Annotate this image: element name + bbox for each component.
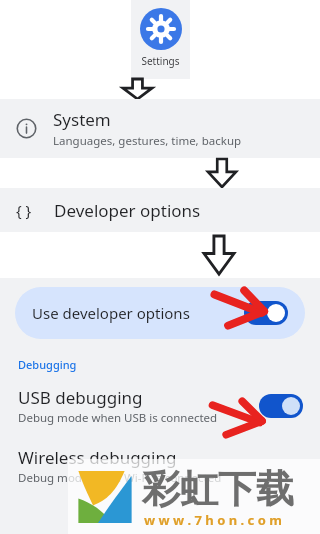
staticText: 彩虹下载 — [142, 465, 294, 513]
button[interactable]: Toggle — [244, 301, 288, 325]
staticText: Debug mode when Wi-Fi is connected — [18, 470, 222, 486]
staticText: w w w . 7 h o n . c o m — [144, 511, 282, 529]
staticText: Wireless debugging — [18, 446, 177, 469]
button[interactable]: Toggle — [259, 394, 303, 418]
staticText: Use developer options — [32, 303, 190, 323]
button[interactable]: Settings — [131, 0, 190, 79]
staticText: Settings — [141, 54, 180, 68]
staticText: Debugging — [18, 357, 77, 372]
staticText: Languages, gestures, time, backup — [53, 133, 242, 149]
staticText: System — [53, 108, 111, 131]
button[interactable]: { } — [0, 188, 320, 232]
staticText: Developer options — [54, 199, 201, 222]
button[interactable]: Use developer options — [15, 287, 305, 339]
staticText: { } — [16, 200, 32, 220]
button[interactable]: System — [0, 99, 320, 158]
button[interactable]: USB debugging — [0, 384, 320, 428]
staticText: USB debugging — [18, 386, 143, 409]
staticText: Debug mode when USB is connected — [18, 410, 218, 426]
button[interactable]: Wireless debugging — [0, 444, 320, 488]
